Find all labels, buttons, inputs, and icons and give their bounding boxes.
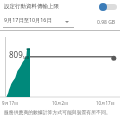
staticText: MB	[23, 55, 29, 60]
staticText: 服務供應商的數據計算方式可能與裝置有所不同。	[4, 109, 111, 115]
staticText: 9月17日	[2, 100, 19, 106]
staticText: 10月17日	[96, 100, 115, 106]
button[interactable]: Toggle mobile data limit	[99, 2, 117, 11]
button[interactable]: 設定行動資料傳輸上限	[0, 0, 120, 13]
staticText: 10月2日	[52, 100, 69, 106]
staticText: 809	[9, 49, 23, 60]
staticText: 設定行動資料傳輸上限	[4, 3, 59, 10]
button[interactable]: 9月17日至10月16日	[3, 13, 74, 28]
staticText: 9月17日至10月16日	[4, 16, 52, 23]
staticText: 0.98 GB	[97, 19, 116, 26]
